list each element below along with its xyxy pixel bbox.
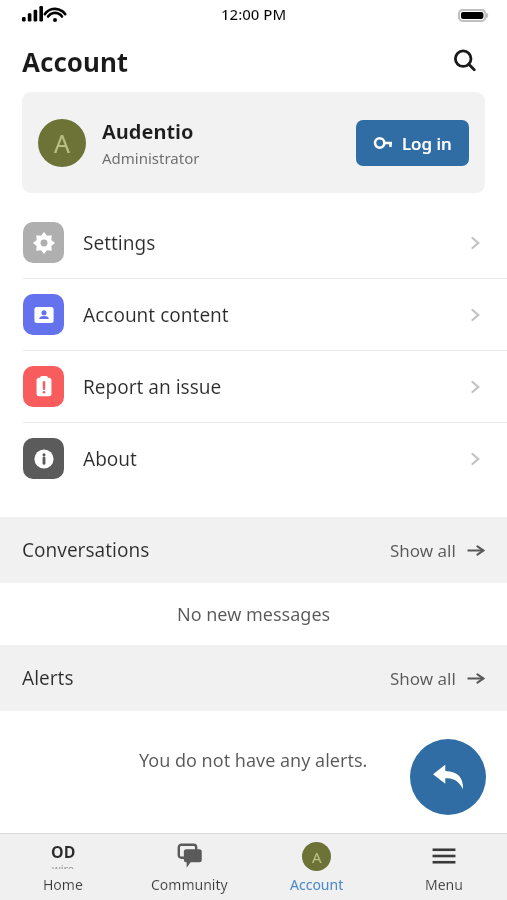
staticText: Audentio [102,118,194,145]
staticText: Account [290,875,344,894]
staticText: Community [151,875,228,894]
button[interactable]: Account content [0,279,507,350]
staticText: A [312,847,322,867]
staticText: Settings [83,230,466,256]
button[interactable]: A [253,834,380,900]
button[interactable]: Community [126,834,253,900]
staticText: No new messages [177,602,331,627]
button[interactable]: Alerts [0,645,507,711]
staticText: About [83,446,466,472]
staticText: 12:00 PM [221,4,287,24]
staticText: OD [51,841,76,863]
staticText: Alerts [22,665,390,691]
staticText: Report an issue [83,374,466,400]
staticText: Log in [402,132,452,155]
button[interactable]: Settings [0,207,507,278]
staticText: You do not have any alerts. [139,748,368,773]
button[interactable]: OD [0,834,126,900]
staticText: Menu [425,875,463,894]
staticText: wire [52,861,75,869]
staticText: Show all [390,667,456,690]
button[interactable]: Log in [356,120,469,166]
button[interactable]: Conversations [0,517,507,583]
button[interactable]: Reply [410,739,486,815]
button[interactable]: Report an issue [0,351,507,422]
button[interactable]: Search [445,41,485,81]
staticText: Conversations [22,537,390,563]
staticText: Show all [390,539,456,562]
staticText: A [54,126,70,160]
button[interactable]: About [0,423,507,494]
staticText: Home [43,875,83,894]
staticText: Account content [83,302,466,328]
button[interactable]: Menu [380,834,507,900]
staticText: Administrator [102,148,200,168]
staticText: Account [22,44,129,79]
